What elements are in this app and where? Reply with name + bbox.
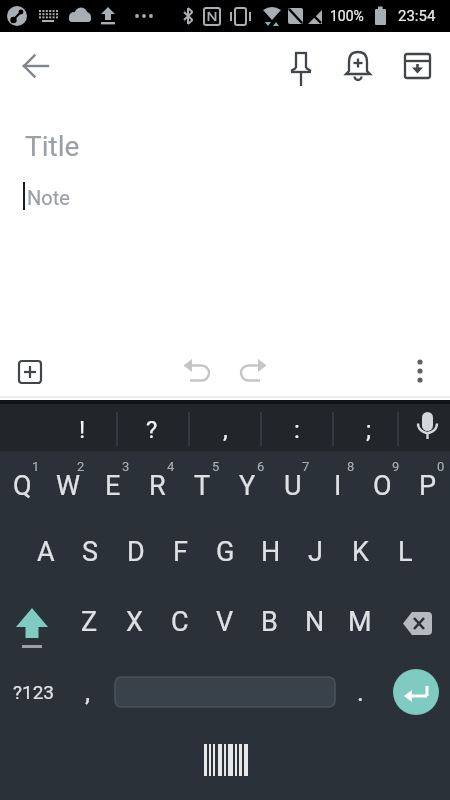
button[interactable] [6, 348, 54, 396]
button[interactable] [229, 348, 277, 396]
staticText: 1 [32, 459, 40, 474]
staticText: R [149, 470, 166, 502]
button[interactable]: J [293, 518, 338, 586]
staticText: W [56, 470, 80, 502]
button[interactable] [173, 348, 221, 396]
button[interactable]: V [202, 588, 247, 655]
staticText: 0 [437, 459, 445, 474]
staticText: F [173, 536, 188, 568]
staticText: Q [13, 470, 32, 502]
button[interactable]: ; [336, 404, 402, 451]
button[interactable] [396, 347, 444, 395]
staticText: B [261, 606, 278, 638]
button[interactable]: ? [119, 404, 185, 451]
button[interactable]: F [158, 518, 203, 586]
staticText: 5 [212, 459, 220, 474]
staticText: U [284, 470, 302, 502]
button[interactable]: : [264, 404, 330, 451]
staticText: V [216, 606, 234, 638]
button[interactable]: . [338, 658, 383, 726]
button[interactable]: Q [0, 452, 45, 520]
button[interactable] [394, 588, 444, 655]
staticText: ; [366, 416, 372, 444]
button[interactable]: D [113, 518, 158, 586]
staticText: Title [25, 130, 80, 163]
button[interactable]: , [65, 658, 110, 726]
button[interactable]: H [248, 518, 293, 586]
staticText: 9 [392, 459, 400, 474]
staticText: E [105, 470, 121, 502]
staticText: A [37, 536, 55, 568]
staticText: P [419, 470, 437, 502]
staticText: 4 [167, 459, 175, 474]
button[interactable] [277, 42, 325, 90]
staticText: H [261, 536, 281, 568]
button[interactable]: Note [0, 180, 450, 222]
button[interactable] [112, 658, 338, 726]
button[interactable]: R [135, 452, 180, 520]
staticText: 6 [257, 459, 265, 474]
staticText: , [223, 416, 228, 444]
button[interactable] [393, 669, 439, 715]
button[interactable]: ?123 [10, 658, 58, 726]
button[interactable]: P [405, 452, 450, 520]
button[interactable]: T [180, 452, 225, 520]
staticText: Note [27, 186, 70, 209]
button[interactable]: U [270, 452, 315, 520]
button[interactable]: , [192, 404, 258, 451]
button[interactable]: Title [0, 128, 450, 180]
button[interactable]: B [247, 588, 292, 655]
staticText: K [352, 536, 369, 568]
button[interactable]: I [315, 452, 360, 520]
button[interactable] [393, 42, 441, 90]
button[interactable]: G [203, 518, 248, 586]
staticText: J [308, 536, 323, 568]
button[interactable]: L [383, 518, 428, 586]
staticText: 100% [330, 8, 364, 24]
button[interactable] [397, 404, 450, 451]
staticText: , [85, 677, 91, 707]
staticText: Z [81, 606, 98, 638]
button[interactable]: W [45, 452, 90, 520]
staticText: . [357, 677, 364, 707]
staticText: ?123 [13, 681, 55, 703]
button[interactable]: O [360, 452, 405, 520]
button[interactable] [12, 42, 60, 90]
button[interactable]: Z [67, 588, 112, 655]
button[interactable] [8, 588, 58, 655]
button[interactable]: C [157, 588, 202, 655]
staticText: 23:54 [398, 7, 436, 25]
button[interactable]: X [112, 588, 157, 655]
staticText: N [305, 606, 325, 638]
staticText: I [334, 470, 342, 502]
staticText: C [171, 606, 189, 638]
button[interactable]: Y [225, 452, 270, 520]
staticText: ? [146, 416, 158, 444]
staticText: S [82, 536, 99, 568]
staticText: 7 [302, 459, 310, 474]
button[interactable]: A [23, 518, 68, 586]
button[interactable]: M [337, 588, 382, 655]
staticText: G [216, 536, 235, 568]
button[interactable] [334, 42, 382, 90]
staticText: 3 [122, 459, 130, 474]
staticText: L [398, 536, 413, 568]
staticText: : [294, 416, 300, 444]
button[interactable]: E [90, 452, 135, 520]
button[interactable]: ! [49, 404, 115, 451]
staticText: 2 [77, 459, 85, 474]
button[interactable]: S [68, 518, 113, 586]
staticText: ! [79, 416, 86, 444]
staticText: 8 [347, 459, 355, 474]
staticText: D [127, 536, 145, 568]
staticText: X [126, 606, 143, 638]
button[interactable]: N [292, 588, 337, 655]
staticText: O [373, 470, 392, 502]
staticText: M [348, 606, 372, 638]
button[interactable]: K [338, 518, 383, 586]
staticText: T [194, 470, 211, 502]
staticText: Y [239, 470, 256, 502]
